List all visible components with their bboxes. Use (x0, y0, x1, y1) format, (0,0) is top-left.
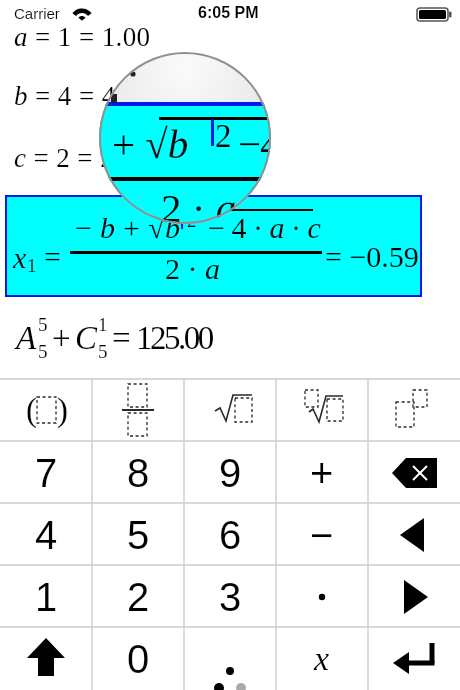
staticText: − (238, 121, 262, 166)
button[interactable] (276, 380, 368, 442)
staticText: + (52, 320, 71, 357)
staticText: = (112, 320, 131, 357)
staticText: b = 4 = 4.00 (14, 81, 151, 111)
staticText: 6 (219, 513, 242, 558)
button[interactable]: x (276, 628, 368, 690)
staticText: 5 (38, 314, 48, 335)
button[interactable]: 2 (92, 566, 184, 628)
button[interactable] (368, 442, 460, 504)
staticText: − b + √b (75, 211, 181, 244)
button[interactable] (276, 566, 368, 628)
staticText: 9 (219, 451, 242, 496)
staticText: 5 (98, 341, 108, 362)
staticText: 125.00 (136, 320, 212, 357)
staticText: Carrier (14, 5, 60, 22)
button[interactable]: 5 (92, 504, 184, 566)
button[interactable]: 4 (0, 504, 92, 566)
staticText: 6:05 PM (198, 4, 259, 22)
staticText: 2 · a (165, 252, 220, 285)
staticText: − (310, 513, 334, 558)
staticText: = −0.59 (325, 240, 419, 273)
staticText: A (16, 320, 37, 357)
staticText: a = 1 = 1.00 (14, 22, 151, 52)
button[interactable]: 9 (184, 442, 276, 504)
staticText: 2 (215, 118, 232, 155)
staticText: 2 (127, 575, 150, 620)
staticText: + √b (112, 121, 189, 166)
staticText: 5 (127, 513, 150, 558)
staticText: = (44, 240, 61, 273)
staticText: 5 (38, 341, 48, 362)
button[interactable]: − (276, 504, 368, 566)
staticText: 0 (127, 637, 150, 682)
staticText: 1 (27, 255, 37, 276)
button[interactable] (368, 628, 460, 690)
button[interactable]: 6 (184, 504, 276, 566)
button[interactable] (368, 504, 460, 566)
staticText: 7 (35, 451, 58, 496)
button[interactable]: 8 (92, 442, 184, 504)
button[interactable] (0, 628, 92, 690)
staticText: c = 2 = 2.00 (14, 143, 149, 173)
staticText: 2 (187, 210, 197, 231)
staticText: x (314, 640, 330, 678)
staticText: 4 (35, 513, 58, 558)
staticText: 4 (260, 121, 271, 166)
staticText: 8 (127, 451, 150, 496)
staticText: 2 · a (161, 185, 237, 224)
staticText: 1 (98, 314, 108, 335)
button[interactable]: 3 (184, 566, 276, 628)
button[interactable] (92, 380, 184, 442)
button[interactable] (368, 380, 460, 442)
button[interactable]: 7 (0, 442, 92, 504)
button[interactable]: x (5, 195, 422, 297)
button[interactable] (0, 380, 92, 442)
staticText: x (13, 241, 27, 274)
staticText: ) (57, 392, 68, 429)
staticText: ( (26, 392, 37, 429)
staticText: C (75, 320, 98, 357)
button[interactable]: 1 (0, 566, 92, 628)
button[interactable] (184, 628, 276, 690)
staticText: − 4 · a · c (208, 211, 321, 244)
staticText: + (310, 451, 334, 496)
button[interactable] (184, 380, 276, 442)
staticText: 1 (35, 575, 58, 620)
staticText: 3 (219, 575, 242, 620)
button[interactable]: 0 (92, 628, 184, 690)
button[interactable]: + (276, 442, 368, 504)
button[interactable] (368, 566, 460, 628)
